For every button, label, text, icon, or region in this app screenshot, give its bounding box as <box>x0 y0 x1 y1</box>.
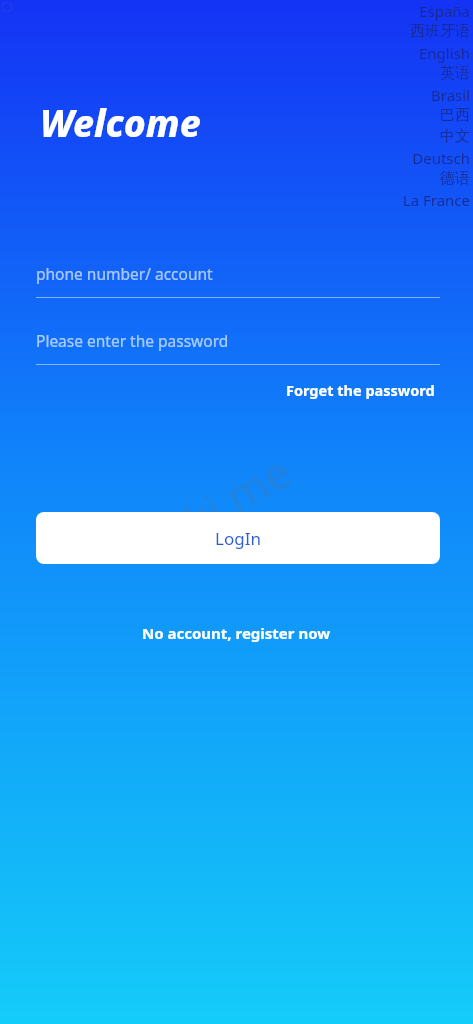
staticText: u5ki.me <box>128 441 301 575</box>
button[interactable]: English <box>418 42 470 63</box>
button[interactable]: Deutsch <box>412 147 470 168</box>
button[interactable]: Please enter the password <box>36 315 440 365</box>
staticText: English <box>418 43 470 63</box>
button[interactable]: 德语 <box>440 168 470 189</box>
staticText: phone number/ account <box>36 263 213 284</box>
staticText: Brasil <box>431 85 470 105</box>
staticText: La France <box>402 190 470 210</box>
staticText: Deutsch <box>412 148 470 168</box>
staticText: Please enter the password <box>36 330 229 351</box>
staticText: España <box>419 1 470 21</box>
staticText: Forget the password <box>286 380 435 400</box>
button[interactable]: 中文 <box>440 126 470 147</box>
button[interactable]: 英语 <box>440 63 470 84</box>
staticText: 德语 <box>440 169 470 188</box>
button[interactable]: 巴西 <box>440 105 470 126</box>
button[interactable]: Brasil <box>431 84 470 105</box>
button[interactable]: phone number/ account <box>36 248 440 298</box>
button[interactable]: LogIn <box>36 512 440 564</box>
button[interactable]: Forget the password <box>286 376 435 404</box>
staticText: 中文 <box>440 127 470 146</box>
staticText: 西班牙语 <box>410 22 470 41</box>
button[interactable]: La France <box>402 189 470 210</box>
button[interactable]: 西班牙语 <box>410 21 470 42</box>
button[interactable]: España <box>419 0 470 21</box>
staticText: 英语 <box>440 64 470 83</box>
staticText: 巴西 <box>440 106 470 125</box>
staticText: Welcome <box>40 97 201 147</box>
staticText: No account, register now <box>142 623 331 643</box>
staticText: LogIn <box>215 527 261 550</box>
button[interactable]: No account, register now <box>0 620 473 646</box>
